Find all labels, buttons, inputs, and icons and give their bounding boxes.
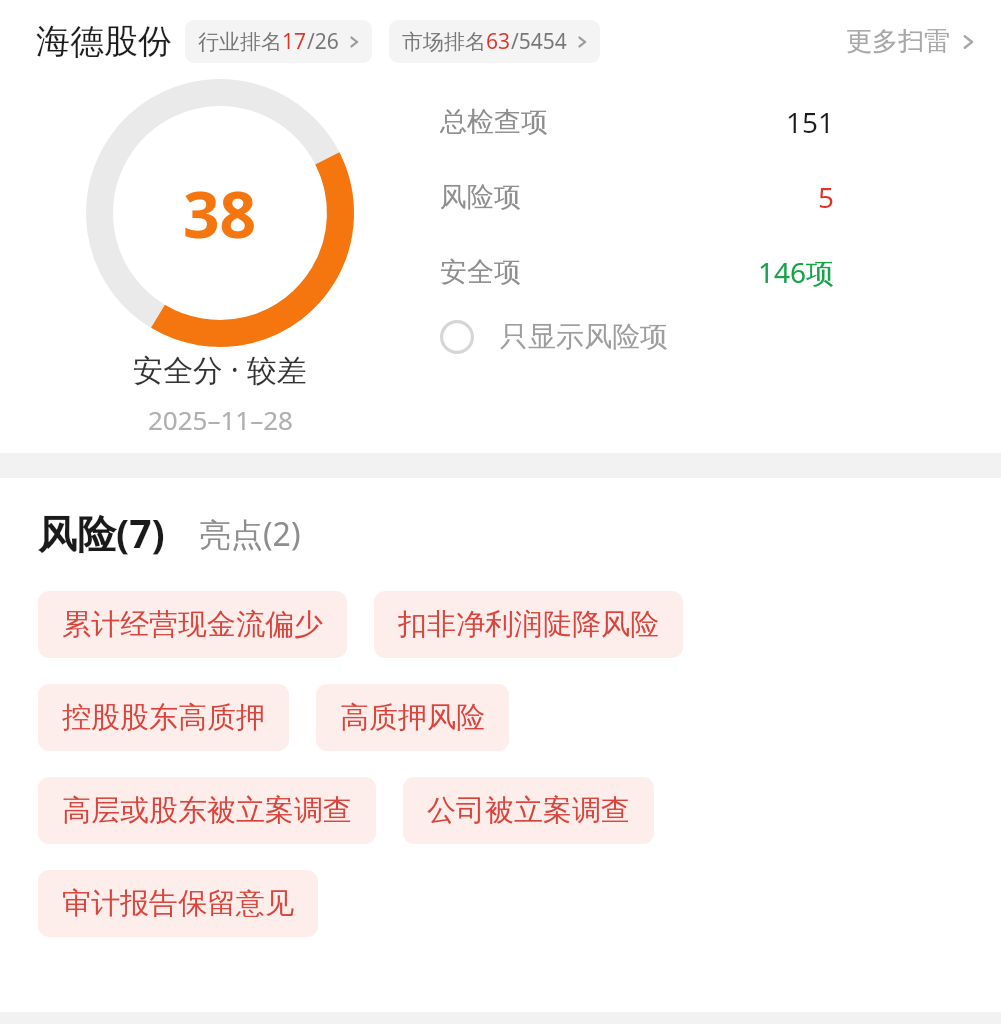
button[interactable]: 公司被立案调查 [403, 777, 654, 844]
staticText: 5 [818, 178, 835, 216]
button[interactable]: 只显示风险项 [440, 319, 668, 354]
button[interactable]: 风险项 [440, 178, 835, 216]
button[interactable]: 累计经营现金流偏少 [38, 591, 347, 658]
staticText: 海德股份 [36, 20, 172, 63]
staticText: /26 [307, 27, 339, 56]
button[interactable]: 总检查项 [440, 103, 835, 141]
staticText: 高层或股东被立案调查 [62, 792, 352, 829]
button[interactable]: 行业排名 [185, 20, 372, 63]
staticText: 38 [183, 170, 257, 257]
staticText: 只显示风险项 [500, 319, 668, 354]
staticText: 63 [486, 27, 511, 56]
staticText: 累计经营现金流偏少 [62, 606, 323, 643]
button[interactable]: 控股股东高质押 [38, 684, 289, 751]
staticText: 市场排名 [402, 29, 486, 55]
staticText: 扣非净利润陡降风险 [398, 606, 659, 643]
button[interactable]: 审计报告保留意见 [38, 870, 318, 937]
button[interactable]: 更多扫雷 [846, 25, 977, 58]
staticText: 151 [786, 103, 835, 141]
button[interactable]: 风险(7) [38, 506, 165, 559]
staticText: 亮点(2) [199, 512, 301, 556]
staticText: 审计报告保留意见 [62, 885, 294, 922]
button[interactable]: 安全项 [440, 253, 835, 291]
staticText: 控股股东高质押 [62, 699, 265, 736]
button[interactable]: 市场排名 [389, 20, 600, 63]
staticText: 行业排名 [198, 29, 282, 55]
staticText: 146项 [758, 253, 835, 291]
staticText: 高质押风险 [340, 699, 485, 736]
button[interactable]: 亮点(2) [199, 512, 301, 559]
staticText: 风险项 [440, 180, 521, 214]
button[interactable]: 扣非净利润陡降风险 [374, 591, 683, 658]
staticText: 风险(7) [38, 506, 165, 559]
staticText: 2025–11–28 [148, 402, 293, 437]
staticText: /5454 [511, 27, 567, 56]
staticText: 17 [282, 27, 307, 56]
button[interactable]: 高质押风险 [316, 684, 509, 751]
staticText: 公司被立案调查 [427, 792, 630, 829]
other: 只显示风险项 [440, 320, 474, 354]
staticText: 安全分 · 较差 [133, 349, 307, 390]
button[interactable]: 高层或股东被立案调查 [38, 777, 376, 844]
staticText: 总检查项 [440, 105, 548, 139]
staticText: 更多扫雷 [846, 25, 950, 58]
staticText: 安全项 [440, 255, 521, 289]
